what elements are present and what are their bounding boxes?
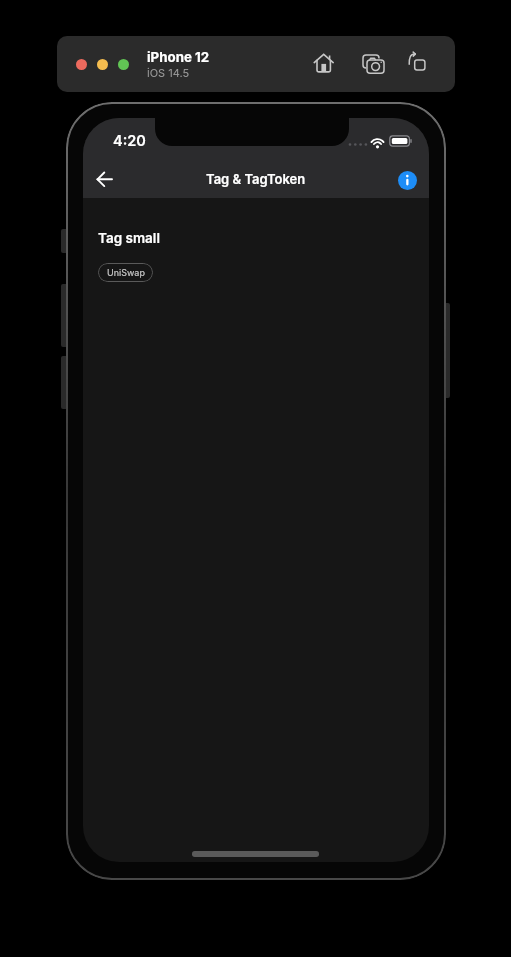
button[interactable] xyxy=(398,171,417,190)
staticText: iPhone 12 xyxy=(147,49,210,65)
button[interactable] xyxy=(312,52,336,76)
button[interactable] xyxy=(76,59,87,70)
button[interactable] xyxy=(361,52,385,76)
staticText: Tag small xyxy=(98,230,160,246)
button[interactable] xyxy=(91,166,119,194)
staticText: Tag & TagToken xyxy=(206,171,306,187)
button[interactable] xyxy=(406,50,430,74)
staticText: iOS 14.5 xyxy=(147,66,190,79)
button[interactable] xyxy=(118,59,129,70)
button[interactable] xyxy=(97,59,108,70)
button[interactable]: UniSwap xyxy=(98,263,153,282)
staticText: UniSwap xyxy=(107,267,145,278)
staticText: 4:20 xyxy=(113,132,146,150)
